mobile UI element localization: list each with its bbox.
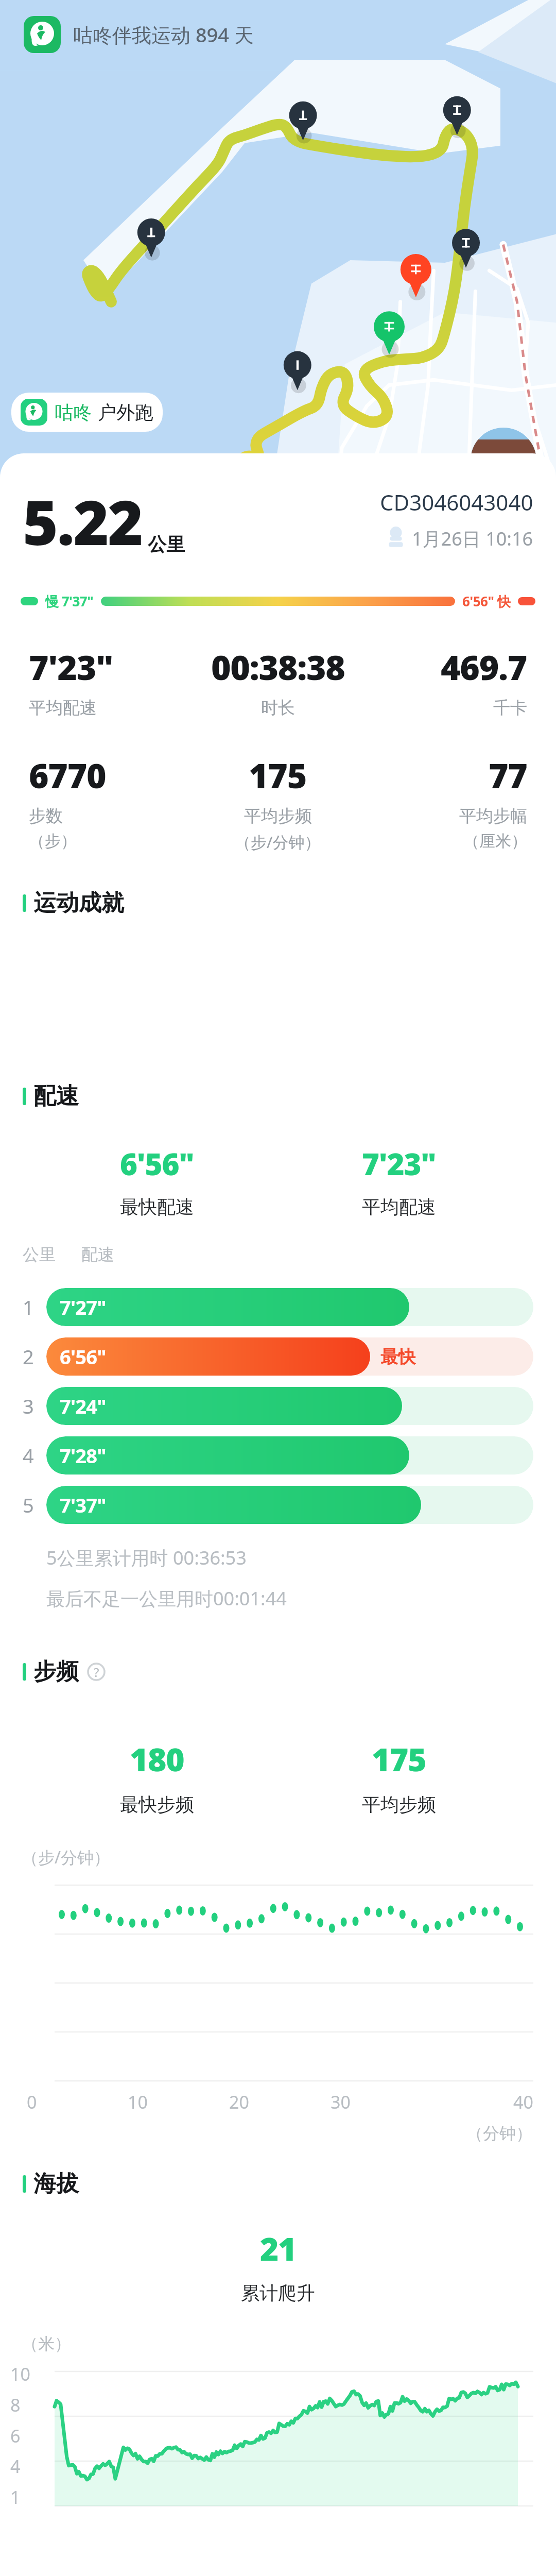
staticText: 7'24" [60, 1393, 106, 1419]
button[interactable]: 4 [23, 1436, 533, 1475]
staticText: 1 [23, 1294, 34, 1320]
staticText: CD3046043040 [380, 487, 533, 517]
button[interactable]: 5 [23, 1486, 533, 1524]
staticText: 咕咚 [55, 401, 92, 424]
staticText: （步） [29, 831, 77, 851]
staticText: 175 [372, 1737, 426, 1781]
staticText: ? [94, 1664, 99, 1681]
staticText: 运动成就 [33, 889, 124, 917]
staticText: 6'56" [60, 1343, 106, 1370]
staticText: 30 [331, 2090, 351, 2114]
staticText: （步/分钟） [235, 831, 321, 853]
staticText: 7'37" [60, 1492, 106, 1518]
staticText: 配速 [33, 1082, 79, 1110]
staticText: 平均步频 [362, 1793, 436, 1816]
staticText: 平均步幅 [459, 805, 527, 827]
staticText: 5公里累计用时 00:36:53 [46, 1545, 247, 1570]
staticText: 步数 [29, 805, 63, 827]
staticText: 时长 [261, 697, 295, 719]
staticText: 公里 [148, 533, 185, 556]
staticText: （步/分钟） [22, 1846, 110, 1869]
button[interactable]: 1 [23, 1288, 533, 1326]
button[interactable]: Help [87, 1663, 106, 1681]
staticText: 40 [513, 2090, 533, 2114]
staticText: 00:38:38 [211, 643, 345, 690]
staticText: （分钟） [466, 2123, 532, 2144]
staticText: 2 [23, 1343, 34, 1370]
staticText: 0 [27, 2090, 37, 2114]
staticText: 10 [128, 2090, 148, 2114]
staticText: 平均配速 [362, 1195, 436, 1218]
staticText: 公里 [23, 1244, 56, 1265]
staticText: 最快步频 [120, 1793, 194, 1816]
staticText: （米） [22, 2333, 71, 2354]
staticText: 469.7 [441, 643, 527, 690]
staticText: 6 [10, 2424, 21, 2448]
staticText: 慢 7'37" [45, 592, 94, 611]
staticText: 3 [23, 1393, 34, 1419]
staticText: 配速 [81, 1244, 114, 1265]
staticText: 4 [23, 1442, 34, 1469]
staticText: 累计爬升 [241, 2281, 315, 2304]
staticText: 最快 [380, 1346, 415, 1368]
staticText: 千卡 [493, 697, 527, 719]
staticText: 77 [489, 752, 527, 798]
staticText: 7'27" [60, 1294, 106, 1320]
staticText: 平均配速 [29, 697, 97, 719]
staticText: （厘米） [463, 831, 527, 851]
staticText: 步频 [33, 1657, 79, 1686]
staticText: 最快配速 [120, 1195, 194, 1218]
staticText: 10 [10, 2362, 30, 2386]
staticText: 咕咚伴我运动 894 天 [73, 21, 254, 48]
staticText: 海拔 [33, 2170, 79, 2198]
staticText: 7'23" [362, 1143, 436, 1184]
staticText: 最后不足一公里用时00:01:44 [46, 1586, 287, 1611]
staticText: 7'23" [29, 643, 113, 690]
button[interactable]: 3 [23, 1387, 533, 1425]
staticText: 175 [249, 752, 307, 798]
button[interactable]: Profile photo [471, 428, 536, 494]
staticText: 平均步频 [244, 805, 312, 827]
staticText: 5 [23, 1492, 34, 1518]
staticText: 21 [260, 2227, 297, 2270]
staticText: 8 [10, 2393, 21, 2417]
staticText: 20 [229, 2090, 249, 2114]
staticText: 6'56" 快 [462, 592, 511, 611]
button[interactable]: 咕咚 [11, 393, 163, 432]
staticText: 6'56" [120, 1143, 194, 1184]
staticText: 4 [10, 2454, 21, 2478]
staticText: 180 [130, 1737, 184, 1781]
button[interactable]: 2 [23, 1337, 533, 1376]
staticText: 户外跑 [98, 401, 153, 424]
staticText: 6770 [29, 752, 106, 798]
staticText: 1 [10, 2485, 21, 2509]
staticText: 5.22 [23, 480, 143, 563]
staticText: 1月26日 10:16 [412, 526, 533, 551]
staticText: 7'28" [60, 1442, 106, 1469]
